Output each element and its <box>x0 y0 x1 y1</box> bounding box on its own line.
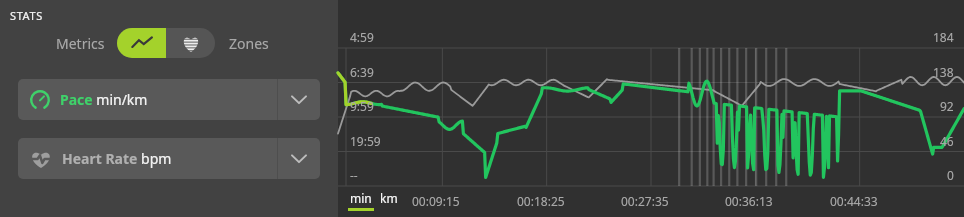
staticText: STATS <box>10 8 43 23</box>
staticText: 00:27:35 <box>621 193 669 209</box>
staticText: Heart Rate bpm <box>62 149 172 168</box>
staticText: -- <box>350 167 358 183</box>
staticText: 46 <box>940 133 954 149</box>
button[interactable]: Expand Heart Rate <box>278 138 320 179</box>
staticText: 138 <box>933 64 954 80</box>
button[interactable]: km <box>380 190 398 211</box>
staticText: 19:59 <box>350 133 381 149</box>
button[interactable]: Pace min/km <box>18 79 277 120</box>
staticText: 4:59 <box>350 29 374 45</box>
button[interactable]: min <box>350 190 372 206</box>
staticText: Pace min/km <box>60 90 148 109</box>
staticText: 6:39 <box>350 64 374 80</box>
staticText: 184 <box>933 29 954 45</box>
staticText: 92 <box>940 98 954 114</box>
staticText: 9:59 <box>350 98 374 114</box>
button[interactable]: Heart Rate bpm <box>18 138 277 179</box>
button[interactable]: Metrics <box>50 34 111 53</box>
button[interactable]: Zones <box>223 34 275 53</box>
staticText: 00:18:25 <box>517 193 565 209</box>
button[interactable]: Metrics chart <box>117 28 166 58</box>
staticText: 00:36:13 <box>725 193 773 209</box>
staticText: 0 <box>947 167 954 183</box>
button[interactable]: Heart rate zones <box>166 28 215 58</box>
staticText: 00:44:33 <box>830 193 878 209</box>
staticText: 00:09:15 <box>412 193 460 209</box>
button[interactable]: Expand Pace <box>278 79 320 120</box>
